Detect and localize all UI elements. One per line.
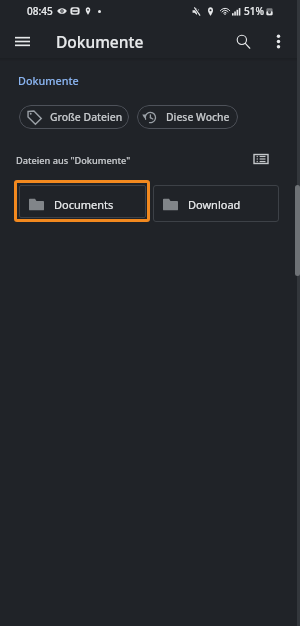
- staticText: Download: [188, 197, 241, 212]
- button[interactable]: More options: [260, 23, 296, 59]
- staticText: Diese Woche: [166, 110, 230, 124]
- button[interactable]: Download: [153, 185, 279, 222]
- button[interactable]: Große Dateien: [19, 105, 129, 129]
- button[interactable]: Diese Woche: [137, 105, 238, 129]
- button[interactable]: Documents: [19, 185, 146, 218]
- button[interactable]: Switch to list view: [249, 147, 273, 171]
- button[interactable]: Search: [225, 23, 261, 59]
- staticText: Große Dateien: [50, 110, 123, 124]
- staticText: Dokumente: [18, 73, 79, 88]
- staticText: 08:45: [27, 4, 53, 18]
- button[interactable]: Navigation menu: [4, 23, 40, 59]
- button[interactable]: Dokumente: [18, 72, 79, 88]
- staticText: Documents: [54, 197, 114, 212]
- staticText: Dokumente: [56, 31, 144, 52]
- staticText: Dateien aus "Dokumente": [16, 154, 131, 167]
- staticText: 51%: [244, 4, 264, 18]
